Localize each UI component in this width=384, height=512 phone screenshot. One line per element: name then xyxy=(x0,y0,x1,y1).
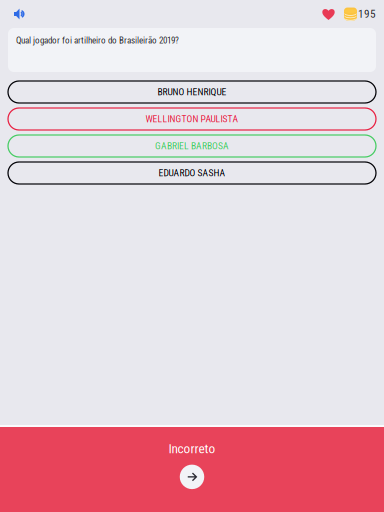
staticText: WELLINGTON PAULISTA xyxy=(145,113,238,125)
button[interactable]: WELLINGTON PAULISTA xyxy=(8,108,376,130)
staticText: 195 xyxy=(358,7,376,21)
staticText: Incorreto xyxy=(168,441,215,457)
button[interactable]: EDUARDO SASHA xyxy=(8,162,376,184)
button[interactable]: Next question xyxy=(180,465,204,489)
button[interactable]: GABRIEL BARBOSA xyxy=(8,135,376,157)
button[interactable]: BRUNO HENRIQUE xyxy=(8,81,376,103)
staticText: BRUNO HENRIQUE xyxy=(157,86,226,98)
button[interactable]: Sound xyxy=(0,3,35,24)
staticText: Qual jogador foi artilheiro do Brasileir… xyxy=(16,35,179,46)
staticText: EDUARDO SASHA xyxy=(158,167,225,179)
staticText: GABRIEL BARBOSA xyxy=(155,140,229,152)
